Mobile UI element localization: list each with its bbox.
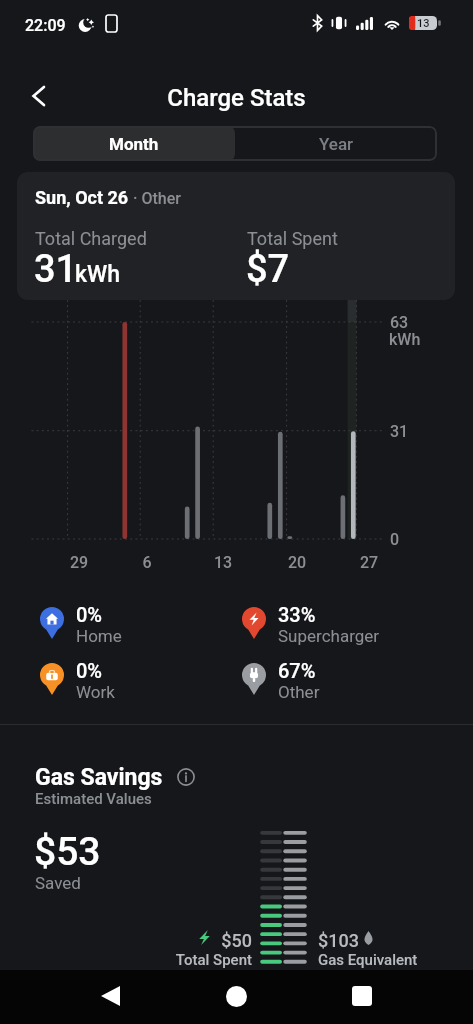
button[interactable]: 0%	[36, 659, 206, 701]
button[interactable]: Gas Savings	[35, 764, 195, 790]
button[interactable]: 33%	[238, 603, 408, 645]
staticText: $103	[318, 930, 359, 951]
button[interactable]: 0%	[36, 603, 206, 645]
staticText: Gas Equivalent	[318, 951, 418, 969]
staticText: 67%	[278, 659, 316, 682]
staticText: 33%	[278, 603, 316, 626]
staticText: Year	[319, 134, 354, 154]
staticText: Total Charged	[35, 228, 147, 249]
staticText: Sun, Oct 26	[35, 187, 129, 208]
staticText: 13	[417, 17, 430, 30]
button[interactable]: Year	[235, 126, 437, 161]
staticText: kWh	[75, 261, 121, 288]
staticText: 22:09	[25, 16, 66, 35]
staticText: 0	[390, 530, 400, 549]
button[interactable]: Sun, Oct 26	[17, 172, 455, 300]
other: Info	[177, 768, 195, 786]
staticText: 6	[122, 553, 172, 572]
staticText: $7	[246, 247, 290, 292]
staticText: 63	[390, 313, 409, 332]
staticText: Other	[278, 682, 320, 702]
staticText: Gas Savings	[35, 764, 163, 790]
staticText: Total Spent	[152, 951, 252, 969]
staticText: Charge Stats	[0, 84, 473, 112]
button[interactable]: Home	[212, 972, 260, 1020]
button[interactable]: Month	[33, 126, 235, 161]
button[interactable]: 67%	[238, 659, 408, 701]
button[interactable]: Back	[16, 74, 60, 118]
staticText: Supercharger	[278, 626, 380, 646]
staticText: 31	[34, 247, 78, 292]
staticText: Total Spent	[247, 228, 338, 249]
staticText: 13	[198, 553, 248, 572]
staticText: kWh	[389, 330, 421, 349]
button[interactable]: Back	[86, 972, 134, 1020]
staticText: Saved	[35, 873, 81, 893]
staticText: 27	[344, 553, 394, 572]
staticText: $50	[152, 930, 252, 951]
staticText: 0%	[76, 659, 103, 682]
staticText: 29	[54, 553, 104, 572]
staticText: 31	[390, 422, 409, 441]
staticText: 0%	[76, 603, 103, 626]
staticText: Home	[76, 626, 122, 646]
staticText: Work	[76, 682, 115, 702]
staticText: 20	[272, 553, 322, 572]
staticText: · Other	[129, 189, 181, 208]
staticText: $53	[34, 829, 101, 875]
button[interactable]: Recent apps	[338, 972, 386, 1020]
staticText: Estimated Values	[35, 790, 152, 808]
staticText: Month	[109, 134, 159, 154]
